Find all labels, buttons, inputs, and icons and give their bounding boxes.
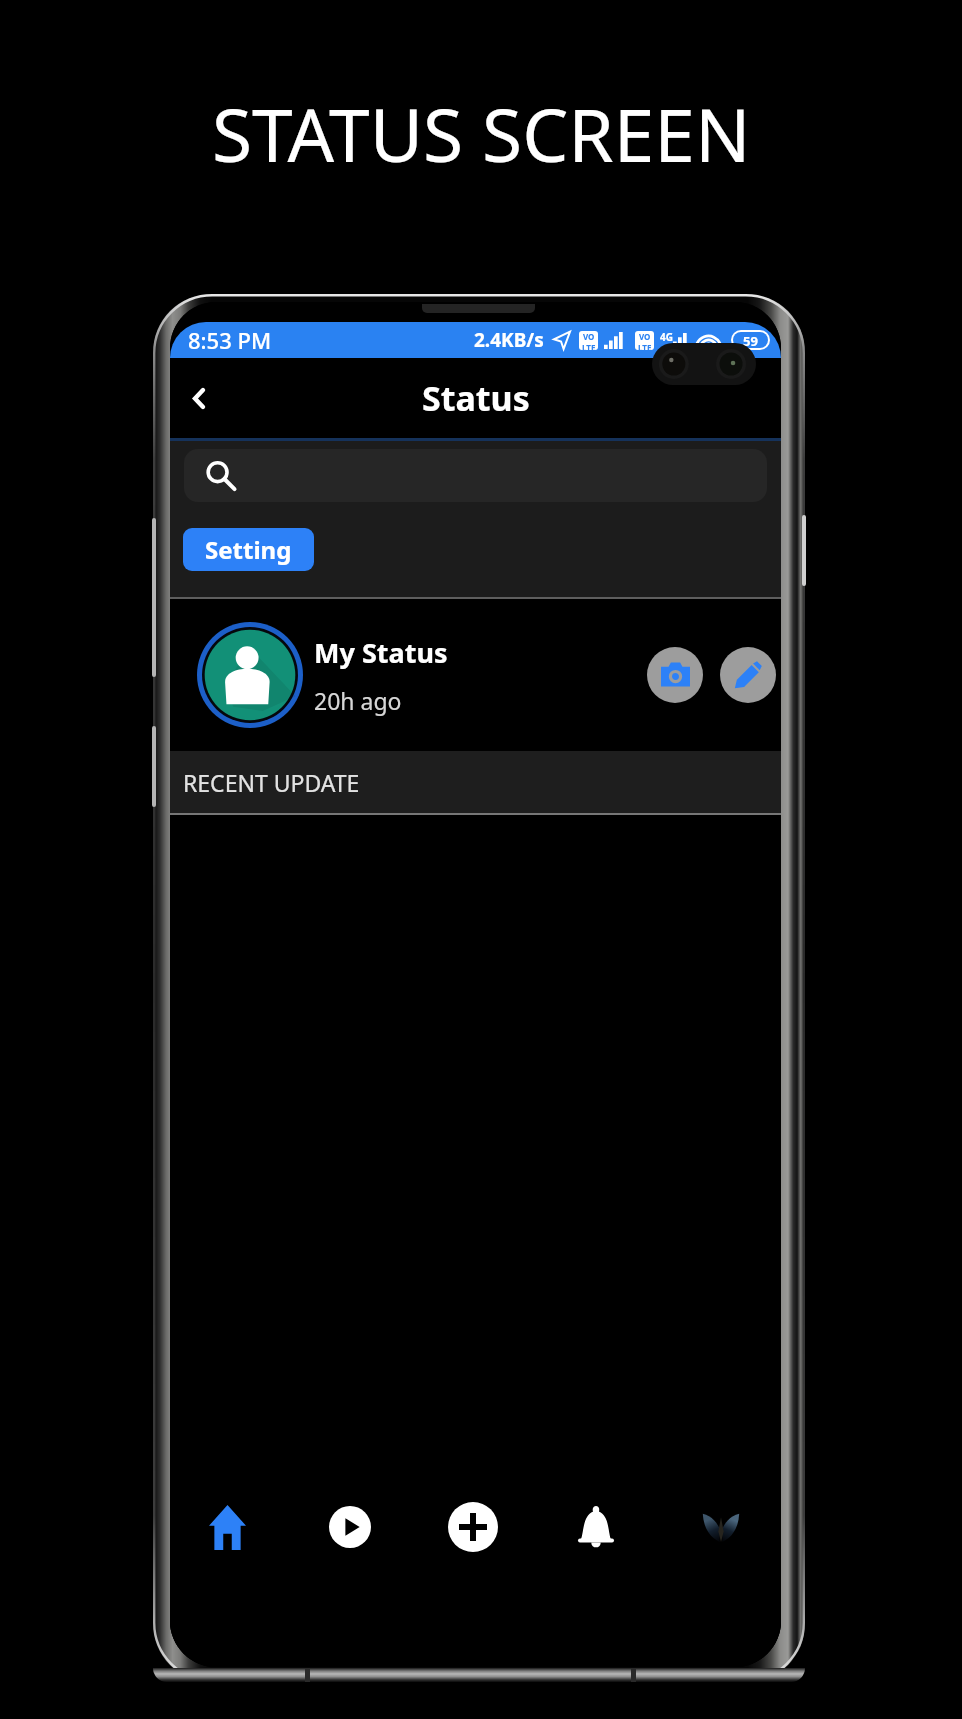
staticText: VO — [639, 331, 651, 342]
button[interactable]: Profile — [666, 1477, 776, 1577]
staticText: My Status — [314, 634, 448, 671]
staticText: LTE — [582, 342, 596, 350]
staticText: VO — [583, 331, 595, 342]
button[interactable]: Back — [173, 372, 225, 424]
button[interactable]: Camera — [647, 647, 703, 703]
staticText: 20h ago — [314, 685, 402, 716]
staticText: Setting — [205, 533, 292, 566]
button[interactable]: Edit — [720, 647, 776, 703]
staticText: RECENT UPDATE — [183, 767, 360, 798]
button[interactable]: My Status — [170, 599, 781, 751]
button[interactable]: Notifications — [541, 1477, 651, 1577]
button[interactable]: Setting — [183, 528, 314, 571]
staticText: STATUS SCREEN — [212, 84, 751, 183]
button[interactable]: Add — [418, 1477, 528, 1577]
staticText: LTE — [638, 342, 652, 350]
button[interactable]: Play — [295, 1477, 405, 1577]
button[interactable]: Search — [184, 449, 767, 502]
staticText: 59 — [743, 332, 758, 348]
button[interactable]: Home — [172, 1477, 282, 1577]
staticText: 2.4KB/s — [474, 327, 544, 353]
staticText: 4G — [660, 330, 673, 344]
staticText: 8:53 PM — [188, 325, 272, 355]
staticText: Status — [422, 375, 530, 421]
